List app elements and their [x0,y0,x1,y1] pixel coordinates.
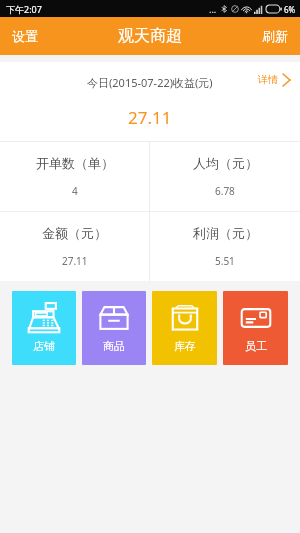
staticText: 库存 [174,339,196,353]
staticText: 利润（元） [193,225,258,241]
button[interactable]: 人均（元） [150,142,300,211]
button[interactable]: 金额（元） [0,212,149,281]
button[interactable]: 利润（元） [150,212,300,281]
staticText: 下午2:07 [6,3,42,15]
button[interactable]: 设置 [0,17,50,55]
staticText: 设置 [12,28,38,44]
staticText: 6% [284,4,296,15]
staticText: 店铺 [33,339,55,353]
staticText: 27.11 [62,254,88,268]
button[interactable]: 库存 [152,291,217,365]
other: 详情 [283,74,290,86]
staticText: 详情 [258,73,278,86]
staticText: 刷新 [262,28,288,44]
staticText: 今日(2015-07-22)收益(元) [87,75,213,90]
staticText: 金额（元） [42,225,107,241]
staticText: 员工 [245,339,267,353]
staticText: 观天商超 [118,26,182,46]
staticText: 4 [72,184,78,198]
button[interactable]: 商品 [82,291,146,365]
staticText: ... [209,3,217,15]
staticText: 开单数（单） [36,155,114,171]
staticText: 6.78 [215,184,235,198]
staticText: 27.11 [128,106,172,129]
button[interactable]: 员工 [223,291,288,365]
button[interactable]: 详情 [254,70,294,89]
staticText: 5.51 [215,254,235,268]
staticText: 人均（元） [193,155,258,171]
button[interactable]: 开单数（单） [0,142,149,211]
button[interactable]: 店铺 [12,291,76,365]
button[interactable]: 刷新 [250,17,300,55]
staticText: 商品 [103,339,125,353]
